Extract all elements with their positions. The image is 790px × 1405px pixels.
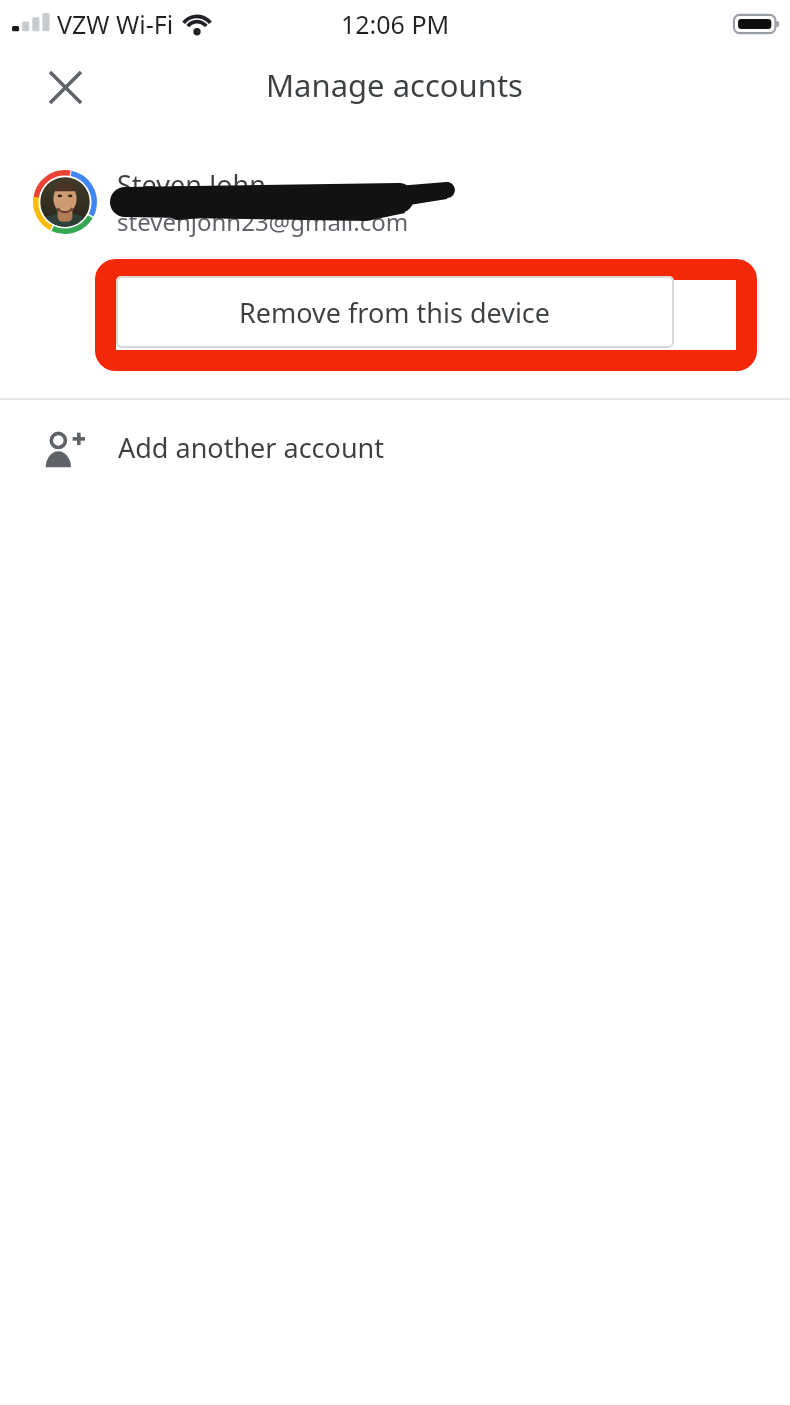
staticText: Remove from this device (239, 294, 551, 331)
staticText: Manage accounts (266, 64, 523, 106)
staticText: Steven John (117, 166, 266, 203)
staticText: Add another account (118, 429, 385, 466)
staticText: stevenjohn23@gmail.com (117, 205, 409, 238)
button[interactable]: Close (33, 55, 97, 119)
button[interactable]: Steven John (0, 161, 790, 243)
staticText: 12:06 PM (341, 7, 450, 41)
staticText: VZW Wi-Fi (57, 7, 174, 41)
button[interactable]: Remove from this device (116, 276, 674, 348)
button[interactable]: Add another account (0, 400, 790, 495)
